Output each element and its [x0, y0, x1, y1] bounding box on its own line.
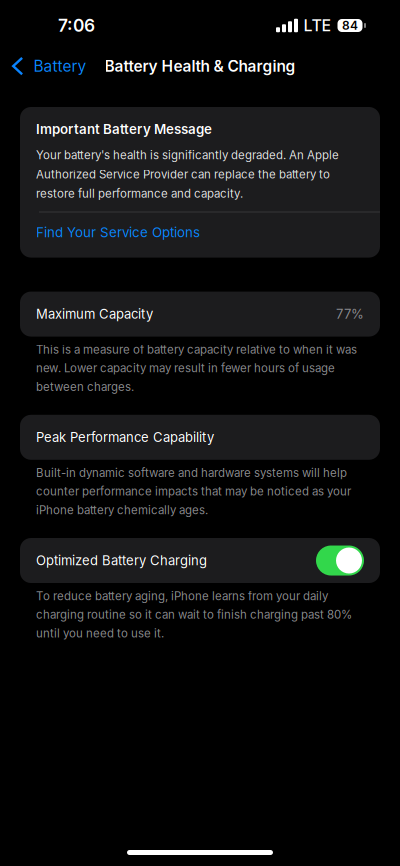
- staticText: Built-in dynamic software and hardware s…: [36, 466, 351, 517]
- staticText: Optimized Battery Charging: [36, 553, 207, 568]
- staticText: Battery Health & Charging: [104, 57, 295, 75]
- staticText: 77%: [336, 306, 364, 322]
- staticText: Maximum Capacity: [36, 306, 153, 322]
- staticText: Important Battery Message: [36, 121, 212, 137]
- staticText: 84: [342, 18, 358, 33]
- button[interactable]: Battery: [0, 49, 95, 82]
- staticText: Your battery's health is significantly d…: [36, 148, 339, 200]
- staticText: Find Your Service Options: [36, 224, 200, 240]
- staticText: 7:06: [58, 15, 95, 36]
- staticText: Peak Performance Capability: [36, 429, 214, 445]
- staticText: This is a measure of battery capacity re…: [36, 343, 357, 394]
- staticText: LTE: [303, 16, 331, 35]
- button[interactable]: Find Your Service Options: [20, 212, 380, 257]
- button[interactable]: Optimized Battery Charging: [20, 538, 380, 583]
- staticText: To reduce battery aging, iPhone learns f…: [36, 589, 352, 640]
- staticText: Battery: [34, 57, 87, 75]
